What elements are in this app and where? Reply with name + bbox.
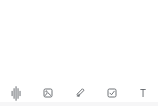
staticText: T — [140, 86, 146, 100]
button[interactable]: Record audio — [0, 84, 32, 102]
button[interactable]: Add image — [32, 84, 64, 102]
button[interactable]: Draw — [64, 84, 96, 102]
button[interactable]: Checklist — [96, 84, 128, 102]
button[interactable]: Text formatting — [128, 84, 158, 102]
